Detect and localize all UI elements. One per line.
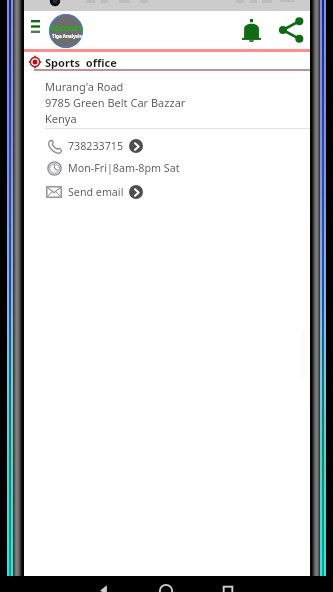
staticText: Send email <box>68 185 124 200</box>
button[interactable]: 738233715 <box>46 135 310 157</box>
staticText: 9785 Green Belt Car Bazzar <box>45 95 186 110</box>
staticText: Tiga Analysis <box>52 33 82 39</box>
button[interactable]: Open navigation menu <box>25 14 45 39</box>
button[interactable]: Back <box>89 576 117 592</box>
button[interactable]: App logo <box>49 14 83 48</box>
button[interactable]: Sports office <box>24 52 310 72</box>
staticText: Murang'a Road <box>45 79 124 94</box>
staticText: 738233715 <box>68 139 124 154</box>
staticText: Mon-Fri|8am-8pm Sat <box>68 161 180 176</box>
button[interactable]: Home <box>152 576 180 592</box>
staticText: Sports office <box>45 55 117 70</box>
staticText: GOCOOGY <box>50 24 83 33</box>
button[interactable]: Mon-Fri|8am-8pm Sat <box>46 157 310 179</box>
button[interactable]: Recent apps <box>214 576 242 592</box>
button[interactable]: Notifications <box>236 13 267 47</box>
button[interactable]: Share <box>274 11 308 49</box>
button[interactable]: Send email <box>46 181 310 203</box>
staticText: Kenya <box>45 111 77 126</box>
